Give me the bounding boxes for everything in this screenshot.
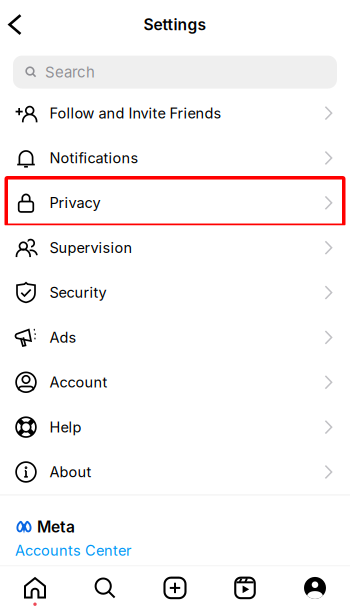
staticText: Notifications — [49, 149, 138, 167]
staticText: Settings — [143, 15, 206, 34]
button[interactable]: Security — [0, 270, 350, 315]
button[interactable]: Help — [0, 405, 350, 450]
staticText: Supervision — [49, 239, 132, 256]
staticText: Search — [45, 63, 95, 81]
staticText: About — [49, 463, 91, 481]
staticText: Ads — [49, 329, 76, 346]
button[interactable]: Create — [140, 566, 210, 609]
button[interactable]: Privacy — [0, 180, 350, 225]
button[interactable]: Reels — [210, 566, 280, 609]
button[interactable]: Follow and Invite Friends — [0, 91, 350, 136]
button[interactable]: Back — [0, 0, 37, 50]
button[interactable]: Supervision — [0, 225, 350, 270]
button[interactable]: Ads — [0, 315, 350, 360]
staticText: Meta — [37, 517, 75, 536]
staticText: Follow and Invite Friends — [49, 104, 221, 122]
staticText: Accounts Center — [15, 542, 131, 559]
button[interactable]: Notifications — [0, 135, 350, 180]
button[interactable]: Accounts Center — [15, 539, 335, 561]
staticText: Security — [49, 284, 106, 301]
button[interactable]: Search — [70, 566, 140, 609]
staticText: Account — [49, 373, 107, 391]
button[interactable]: Home — [0, 566, 70, 609]
staticText: Privacy — [49, 194, 100, 212]
button[interactable]: Profile — [280, 566, 350, 609]
staticText: Help — [49, 418, 81, 436]
button[interactable]: About — [0, 450, 350, 494]
button[interactable]: Account — [0, 360, 350, 405]
